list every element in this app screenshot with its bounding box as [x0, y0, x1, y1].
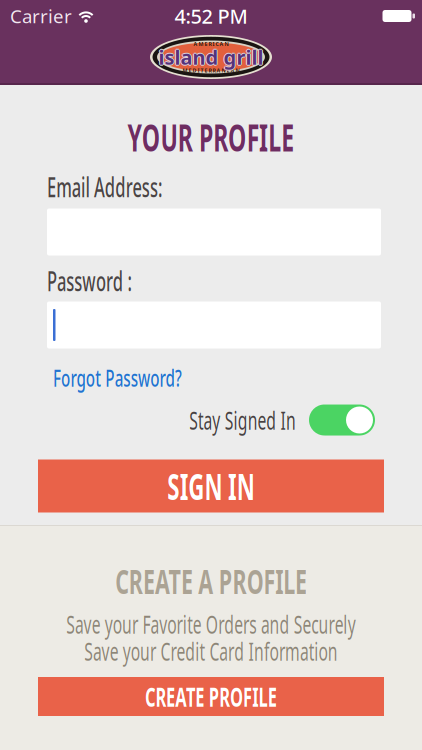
staticText: Stay Signed In: [124, 403, 296, 437]
staticText: Forgot Password?: [53, 363, 245, 393]
staticText: Save your Credit Card Information: [6, 634, 415, 668]
staticText: YOUR PROFILE: [76, 112, 345, 162]
staticText: CREATE A PROFILE: [56, 557, 365, 603]
staticText: Password :: [47, 263, 184, 299]
button[interactable]: Password: [47, 301, 381, 348]
staticText: CREATE PROFILE: [104, 679, 317, 714]
button[interactable]: SIGN IN: [38, 459, 384, 512]
staticText: island grill: [160, 44, 265, 70]
staticText: Save your Favorite Orders and Securely: [0, 607, 422, 641]
staticText: SIGN IN: [140, 462, 281, 510]
staticText: M E D I T E R R A N E A N: [182, 67, 239, 74]
button[interactable]: Forgot Password?: [53, 363, 245, 393]
staticText: island grill: [158, 45, 263, 71]
staticText: island grill: [158, 44, 263, 70]
staticText: island grill: [157, 44, 262, 70]
button[interactable]: CREATE PROFILE: [38, 677, 384, 716]
staticText: island grill: [158, 43, 263, 69]
staticText: A M E R I C A N: [193, 40, 228, 48]
staticText: Carrier: [10, 4, 72, 28]
button[interactable]: Stay Signed In: [309, 404, 375, 435]
staticText: Email Address:: [47, 169, 233, 205]
staticText: 4:52 PM: [174, 3, 247, 29]
